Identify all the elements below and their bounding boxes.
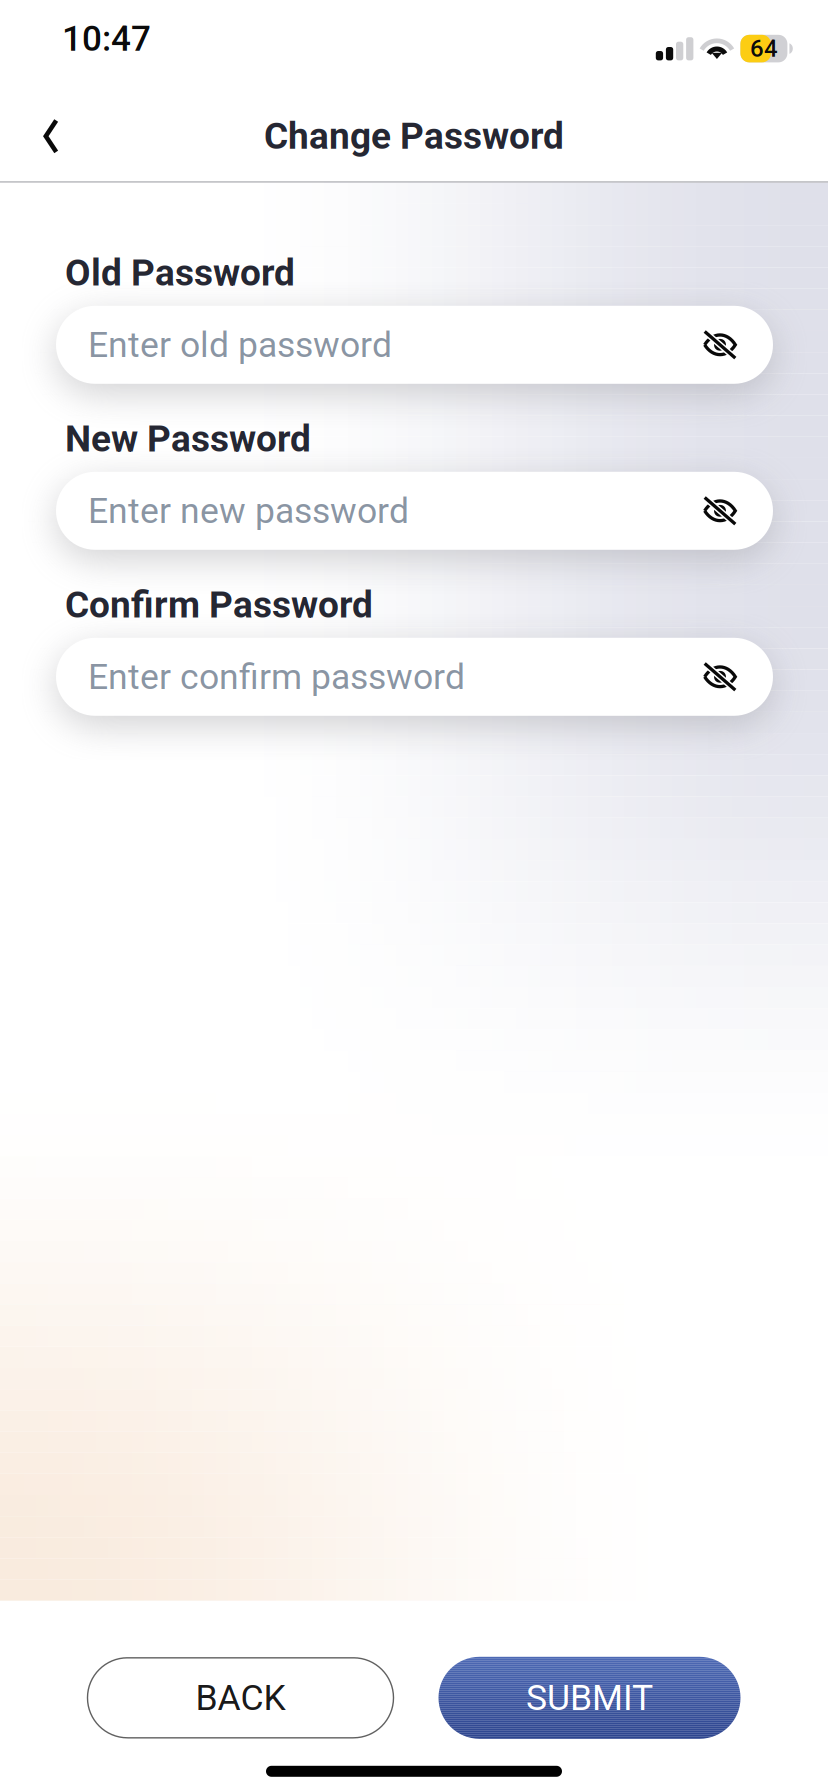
button[interactable]: Back <box>14 99 88 173</box>
staticText: New Password <box>65 417 311 460</box>
button[interactable]: Show Confirm Password <box>681 638 759 716</box>
staticText: Enter new password <box>88 490 409 532</box>
button[interactable]: BACK <box>87 1658 393 1738</box>
button[interactable]: Show New Password <box>681 472 759 550</box>
staticText: Enter old password <box>88 324 392 366</box>
staticText: Change Password <box>264 114 564 158</box>
staticText: BACK <box>195 1677 285 1719</box>
staticText: 10:47 <box>62 18 151 59</box>
staticText: Enter confirm password <box>88 656 465 698</box>
button[interactable]: Show Old Password <box>681 306 759 384</box>
button[interactable]: SUBMIT <box>438 1657 740 1739</box>
staticText: Confirm Password <box>65 583 373 626</box>
staticText: Old Password <box>65 251 295 294</box>
staticText: 64 <box>750 34 778 63</box>
staticText: SUBMIT <box>526 1677 653 1719</box>
